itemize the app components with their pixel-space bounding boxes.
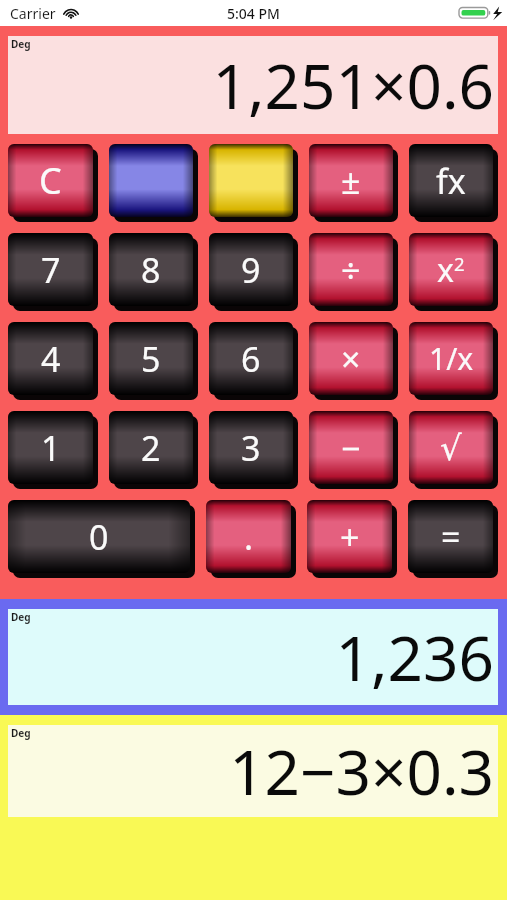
button[interactable]: 9 xyxy=(209,233,298,311)
button[interactable]: × xyxy=(309,322,398,400)
staticText: 2 xyxy=(141,425,161,471)
staticText: 1,251×0.6 xyxy=(212,43,494,127)
button[interactable]: − xyxy=(309,411,398,489)
button[interactable]: 0 xyxy=(8,500,195,578)
button[interactable]: 5 xyxy=(109,322,198,400)
button[interactable]: √ xyxy=(409,411,498,489)
staticText: 12−3×0.3 xyxy=(229,729,494,813)
staticText: 1,236 xyxy=(335,615,494,699)
button[interactable]: C xyxy=(8,144,98,222)
button[interactable]: 2 xyxy=(109,411,198,489)
staticText: ± xyxy=(341,158,361,204)
staticText: 3 xyxy=(241,425,261,471)
staticText: 2 xyxy=(454,251,465,276)
staticText: √ xyxy=(440,428,462,468)
button[interactable]: x xyxy=(409,233,498,311)
button[interactable] xyxy=(109,144,198,222)
staticText: Carrier xyxy=(10,4,56,23)
button[interactable]: 1/x xyxy=(409,322,498,400)
staticText: 6 xyxy=(241,336,261,382)
staticText: 7 xyxy=(41,247,61,293)
staticText: 1 xyxy=(41,425,61,471)
button[interactable]: fx xyxy=(409,144,498,222)
button[interactable]: 1 xyxy=(8,411,98,489)
staticText: fx xyxy=(436,158,466,204)
staticText: . xyxy=(244,514,254,560)
staticText: 9 xyxy=(241,247,261,293)
staticText: Deg xyxy=(11,726,31,740)
button[interactable]: ÷ xyxy=(309,233,398,311)
staticText: 8 xyxy=(141,247,161,293)
button[interactable]: + xyxy=(307,500,397,578)
staticText: 0 xyxy=(89,514,109,560)
button[interactable]: 6 xyxy=(209,322,298,400)
staticText: 4 xyxy=(41,336,61,382)
button[interactable]: 3 xyxy=(209,411,298,489)
staticText: 5:04 PM xyxy=(227,4,280,23)
staticText: Deg xyxy=(11,610,31,624)
button[interactable]: 7 xyxy=(8,233,98,311)
button[interactable]: 4 xyxy=(8,322,98,400)
button[interactable]: ± xyxy=(309,144,398,222)
staticText: = xyxy=(441,514,461,560)
staticText: x xyxy=(437,248,454,292)
staticText: C xyxy=(39,156,62,205)
staticText: Deg xyxy=(11,37,31,51)
staticText: × xyxy=(341,336,361,382)
button[interactable]: . xyxy=(206,500,296,578)
staticText: ÷ xyxy=(341,247,361,293)
staticText: 1/x xyxy=(429,338,474,379)
staticText: + xyxy=(340,514,360,560)
staticText: − xyxy=(341,425,361,471)
button[interactable]: 8 xyxy=(109,233,198,311)
button[interactable]: = xyxy=(408,500,498,578)
staticText: 5 xyxy=(141,336,161,382)
button[interactable] xyxy=(209,144,298,222)
